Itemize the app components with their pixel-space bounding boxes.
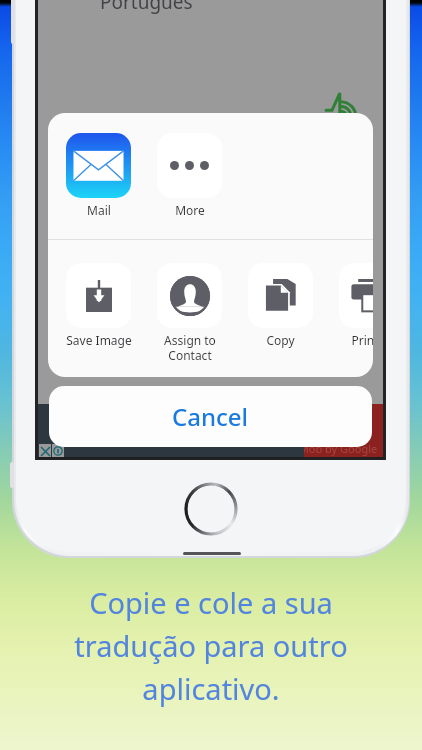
button[interactable]: Cancel [49,386,372,447]
button[interactable]: Assign to Contact [157,263,222,369]
staticText: Copy [266,332,295,348]
staticText: AdMob by Google [285,441,378,456]
staticText: Copie e cole a sua tradução para outro a… [0,583,422,708]
button[interactable]: Ad info [52,444,64,458]
button[interactable]: Mail [66,133,131,239]
button[interactable]: Print [339,263,373,369]
staticText: Mail [87,202,111,218]
button[interactable]: More [157,133,222,239]
button[interactable]: Close ad [39,444,51,458]
staticText: Portugues [100,0,193,15]
staticText: Assign to Contact [164,332,216,363]
button[interactable]: Copy [248,263,313,369]
staticText: Save Image [66,332,132,348]
staticText: Print [351,332,373,348]
staticText: More [175,202,205,218]
button[interactable]: Save Image [66,263,131,369]
staticText: Cancel [172,400,249,433]
